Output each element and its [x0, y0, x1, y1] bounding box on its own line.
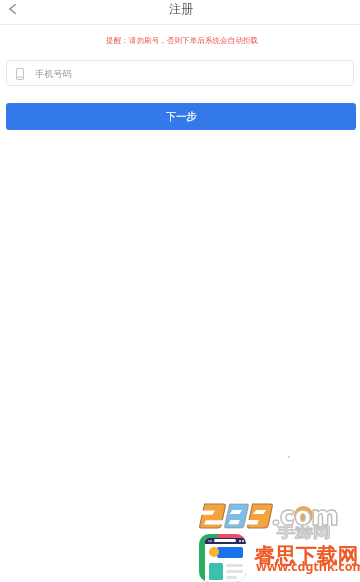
staticText: 手机号码 — [35, 68, 72, 80]
button[interactable]: 下一步 — [6, 103, 356, 130]
button[interactable]: 手机号码 — [6, 60, 354, 86]
staticText: 下一步 — [166, 110, 197, 123]
staticText: 提醒：请勿刷号，否则下单后系统会自动拒载 — [2, 36, 360, 46]
staticText: .com — [272, 496, 339, 533]
staticText: 手游网 — [277, 525, 331, 542]
staticText: 注册 — [169, 1, 194, 16]
staticText: www.cdgthk.com — [256, 558, 360, 575]
button[interactable]: Back — [0, 0, 26, 22]
staticText: 睿思下载网 — [254, 543, 358, 569]
staticText: 手游网 — [277, 525, 331, 542]
staticText: .com — [272, 496, 339, 533]
